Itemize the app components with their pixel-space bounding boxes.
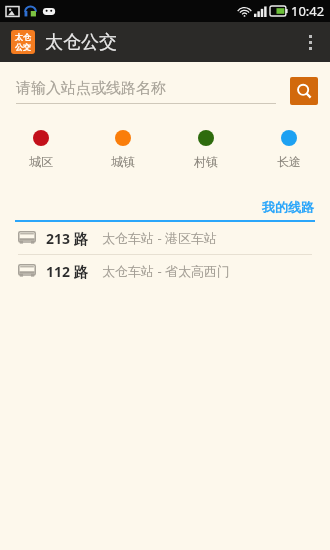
button[interactable]: 长途	[247, 126, 330, 173]
button[interactable]: 我的线路	[262, 199, 314, 215]
staticText: 太仓车站 - 省太高西门	[102, 262, 230, 280]
staticText: 112 路	[46, 262, 88, 281]
staticText: 公交	[15, 42, 31, 52]
staticText: 我的线路	[262, 199, 314, 215]
staticText: 太仓公交	[45, 31, 117, 54]
button[interactable]: 213 路	[0, 222, 330, 254]
staticText: 城区	[29, 154, 53, 169]
button[interactable]: 城区	[0, 126, 82, 173]
staticText: 村镇	[194, 154, 218, 169]
button[interactable]: Search	[290, 77, 318, 105]
staticText: 城镇	[111, 154, 135, 169]
button[interactable]: 城镇	[82, 126, 164, 173]
staticText: 太仓车站 - 港区车站	[102, 229, 217, 247]
staticText: 长途	[277, 154, 301, 169]
button[interactable]: More options	[290, 22, 330, 62]
button[interactable]: 村镇	[164, 126, 247, 173]
staticText: 请输入站点或线路名称	[16, 79, 166, 98]
staticText: 213 路	[46, 229, 88, 248]
staticText: 太仓	[15, 32, 31, 42]
staticText: 10:42	[291, 2, 325, 20]
button[interactable]: 112 路	[0, 255, 330, 287]
button[interactable]: 请输入站点或线路名称	[16, 79, 276, 104]
